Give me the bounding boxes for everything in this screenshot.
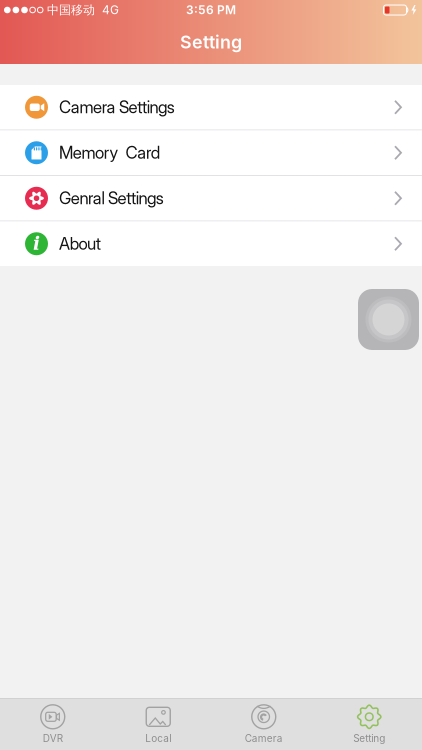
button[interactable]: DVR: [0, 700, 105, 749]
staticText: Camera Settings: [59, 97, 175, 117]
button[interactable]: Genral Settings: [0, 176, 422, 220]
button[interactable]: Memory Card: [0, 130, 422, 175]
staticText: Setting: [353, 732, 385, 744]
button[interactable]: Camera: [211, 700, 316, 749]
staticText: Camera: [245, 732, 283, 744]
staticText: Memory Card: [59, 143, 160, 163]
button[interactable]: Camera Settings: [0, 85, 422, 129]
button[interactable]: i: [0, 221, 422, 266]
staticText: Setting: [180, 31, 242, 53]
staticText: Genral Settings: [59, 188, 164, 208]
button[interactable]: [358, 289, 419, 350]
staticText: 中国移动: [47, 2, 95, 17]
button[interactable]: Setting: [316, 700, 422, 749]
button[interactable]: Local: [105, 700, 211, 749]
staticText: About: [59, 234, 101, 254]
staticText: Local: [145, 732, 171, 744]
staticText: 3:56 PM: [186, 3, 236, 17]
staticText: DVR: [43, 732, 63, 744]
staticText: 4G: [102, 3, 119, 17]
staticText: i: [33, 232, 40, 254]
